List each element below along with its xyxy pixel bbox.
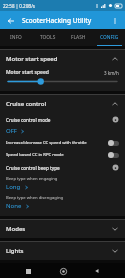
other: Expand section bbox=[111, 225, 119, 233]
button[interactable]: Motor start speed bbox=[0, 68, 125, 77]
staticText: OFF bbox=[6, 127, 17, 135]
staticText: Modes bbox=[6, 225, 111, 233]
staticText: Cruise control bbox=[6, 100, 111, 108]
button[interactable]: Lights bbox=[0, 242, 125, 260]
staticText: Long bbox=[6, 183, 21, 191]
button[interactable]: Modes bbox=[0, 220, 125, 238]
button[interactable]: Cruise control beep type bbox=[0, 161, 125, 174]
button[interactable]: Motor start speed bbox=[0, 50, 125, 68]
button[interactable]: CONFIG bbox=[94, 29, 125, 46]
button[interactable]: Speed based CC in RPC mode bbox=[0, 149, 125, 161]
staticText: Motor start speed bbox=[6, 69, 104, 76]
button[interactable] bbox=[0, 77, 125, 86]
button[interactable]: Cruise control mode bbox=[0, 113, 125, 126]
button[interactable]: OFF bbox=[0, 126, 31, 137]
staticText: Cruise control beep type bbox=[6, 165, 112, 171]
staticText: Lights bbox=[6, 247, 111, 255]
button[interactable]: Cruise control bbox=[0, 95, 125, 113]
staticText: INFO bbox=[10, 34, 22, 41]
other: Collapse section bbox=[111, 55, 119, 63]
staticText: None bbox=[6, 202, 22, 210]
staticText: Increase/decrease CC speed with throttle bbox=[6, 140, 105, 146]
button[interactable]: None bbox=[0, 201, 36, 212]
button[interactable]: TOOLS bbox=[32, 29, 63, 46]
other: Collapse section bbox=[111, 100, 119, 108]
button[interactable]: Increase/decrease CC speed with throttle bbox=[0, 137, 125, 149]
button[interactable]: More options bbox=[108, 14, 121, 27]
staticText: Speed based CC in RPC mode bbox=[6, 152, 105, 158]
staticText: ScooterHacking Utility bbox=[22, 16, 108, 25]
button[interactable]: INFO bbox=[0, 29, 32, 46]
staticText: 3 km/h bbox=[104, 70, 119, 76]
other: Info bbox=[112, 164, 119, 171]
other: Expand section bbox=[111, 247, 119, 255]
staticText: Motor start speed bbox=[6, 55, 111, 63]
staticText: Cruise control mode bbox=[6, 117, 112, 123]
button[interactable]: FLASH bbox=[63, 29, 94, 46]
button[interactable]: Back bbox=[90, 264, 104, 278]
staticText: CONFIG bbox=[100, 34, 119, 41]
staticText: FLASH bbox=[71, 34, 86, 41]
staticText: Beep type when engaging bbox=[6, 176, 125, 182]
button[interactable]: Back bbox=[4, 14, 17, 27]
staticText: 22:58 | 0.20B/s bbox=[3, 3, 36, 9]
other: Info bbox=[112, 116, 119, 123]
staticText: TOOLS bbox=[40, 34, 56, 41]
button[interactable]: Home bbox=[56, 264, 70, 278]
staticText: Beep type when disengaging bbox=[6, 195, 125, 201]
button[interactable]: Recents bbox=[21, 264, 35, 278]
button[interactable]: Long bbox=[0, 182, 35, 193]
